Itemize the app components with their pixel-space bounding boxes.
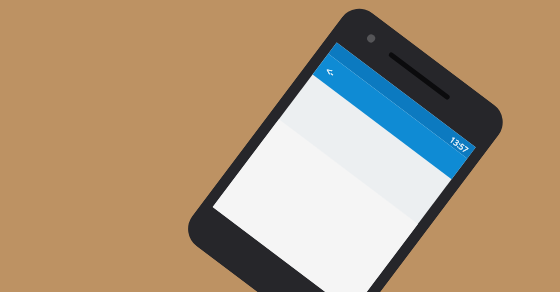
staticText: <- bbox=[323, 63, 338, 80]
staticText: 13:57 bbox=[448, 134, 471, 155]
